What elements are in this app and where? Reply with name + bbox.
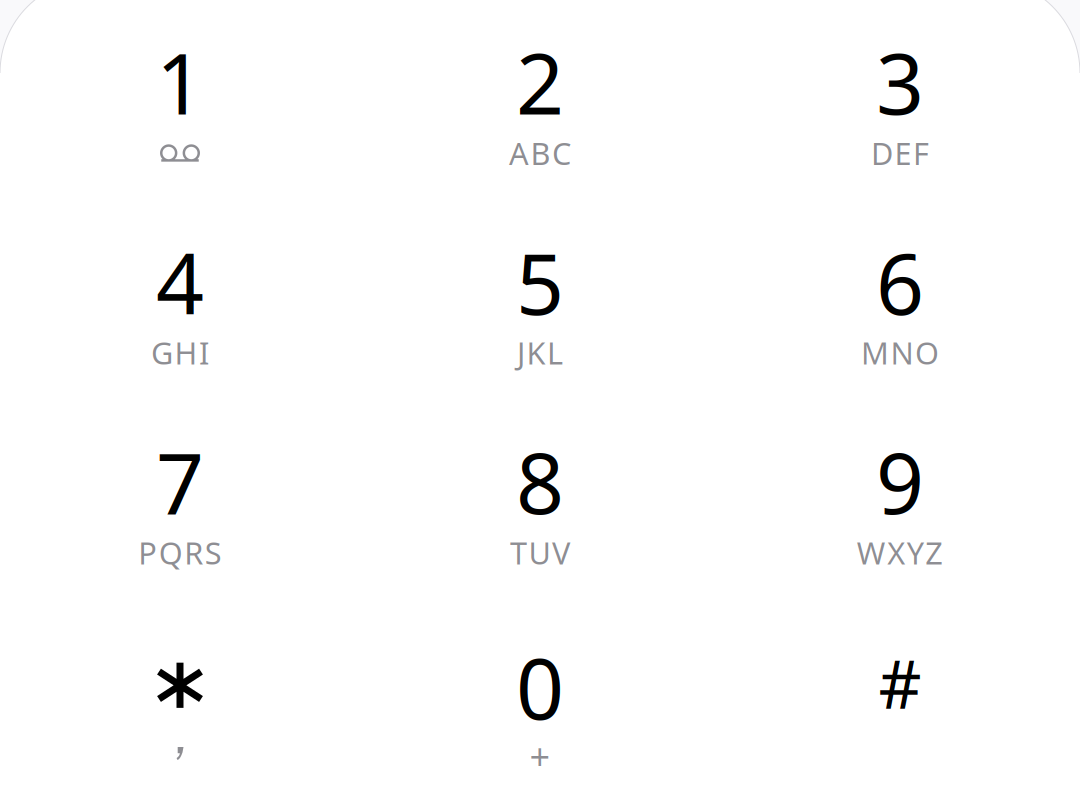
staticText: 6	[876, 226, 924, 338]
button[interactable]: 3, D E F	[722, 22, 1078, 214]
button[interactable]: 9, W X Y Z	[722, 422, 1078, 614]
staticText: MNO	[861, 332, 939, 373]
staticText: 5	[516, 226, 564, 338]
staticText: ABC	[509, 133, 571, 173]
staticText: JKL	[517, 332, 563, 373]
staticText: GHI	[151, 332, 209, 373]
staticText: 8	[516, 425, 564, 537]
staticText: +	[529, 732, 550, 780]
button[interactable]: 7, P Q R S	[2, 422, 358, 614]
staticText: #	[878, 638, 921, 727]
button[interactable]: 6, M N O	[722, 223, 1078, 415]
staticText: 2	[516, 26, 564, 137]
staticText: 7	[156, 425, 204, 537]
staticText: TUV	[510, 532, 570, 573]
staticText: PQRS	[138, 532, 222, 573]
staticText: 9	[876, 425, 924, 537]
button[interactable]: pound	[722, 627, 1078, 811]
button[interactable]: 0, plus	[362, 627, 718, 811]
button[interactable]: 5, J K L	[362, 223, 718, 415]
button[interactable]: 2, A B C	[362, 22, 718, 214]
button[interactable]: star	[2, 627, 358, 811]
staticText: WXYZ	[857, 532, 943, 573]
button[interactable]: 8, T U V	[362, 422, 718, 614]
button[interactable]: 4, G H I	[2, 223, 358, 415]
staticText: 1	[156, 26, 204, 137]
staticText: 0	[516, 631, 564, 742]
staticText: 3	[876, 26, 924, 137]
staticText: DEF	[871, 133, 929, 173]
staticText: 4	[156, 226, 204, 338]
button[interactable]: 1, voicemail	[2, 22, 358, 214]
